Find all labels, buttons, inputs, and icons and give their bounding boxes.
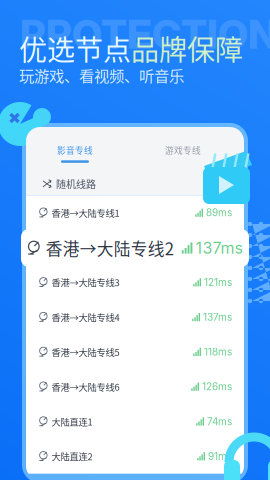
staticText: 137ms bbox=[195, 238, 242, 258]
staticText: 香港→大陆专线3 bbox=[52, 275, 120, 289]
button[interactable]: 大陆直连2 bbox=[26, 439, 244, 474]
staticText: 玩游戏、看视频、听音乐 bbox=[19, 64, 184, 86]
staticText: 大陆直连2 bbox=[52, 449, 93, 463]
staticText: 游戏专线 bbox=[165, 144, 201, 156]
staticText: PROTECTION bbox=[20, 10, 270, 58]
staticText: 137ms bbox=[203, 311, 232, 323]
staticText: 91ms bbox=[208, 450, 232, 462]
staticText: 香港→大陆专线6 bbox=[52, 380, 120, 393]
staticText: 89ms bbox=[206, 207, 232, 219]
staticText: 大陆直连1 bbox=[52, 415, 93, 428]
staticText: 香港→大陆专线2 bbox=[46, 236, 174, 260]
staticText: 74ms bbox=[207, 415, 232, 428]
staticText: 影音专线 bbox=[57, 144, 93, 156]
staticText: 香港→大陆专线5 bbox=[52, 345, 120, 359]
button[interactable]: 香港→大陆专线4 bbox=[26, 300, 244, 334]
staticText: 随机线路 bbox=[56, 177, 96, 191]
staticText: 香港→大陆专线1 bbox=[52, 206, 120, 219]
button[interactable]: 香港→大陆专线6 bbox=[26, 369, 244, 404]
staticText: 香港→大陆专线4 bbox=[52, 310, 120, 324]
button[interactable]: 香港→大陆专线3 bbox=[26, 265, 244, 300]
button[interactable]: 游戏专线 bbox=[148, 144, 218, 163]
button[interactable]: 大陆直连1 bbox=[26, 404, 244, 439]
staticText: 118ms bbox=[204, 346, 232, 358]
staticText: 121ms bbox=[204, 276, 232, 288]
button[interactable]: 香港→大陆专线5 bbox=[26, 334, 244, 369]
staticText: 126ms bbox=[202, 381, 232, 393]
button[interactable]: 影音专线 bbox=[40, 144, 110, 163]
staticText: 优选节点 bbox=[19, 28, 131, 68]
staticText: 品牌保障 bbox=[131, 28, 243, 68]
button[interactable]: 香港→大陆专线1 bbox=[26, 195, 244, 230]
button[interactable]: 香港→大陆专线2 bbox=[21, 229, 249, 267]
